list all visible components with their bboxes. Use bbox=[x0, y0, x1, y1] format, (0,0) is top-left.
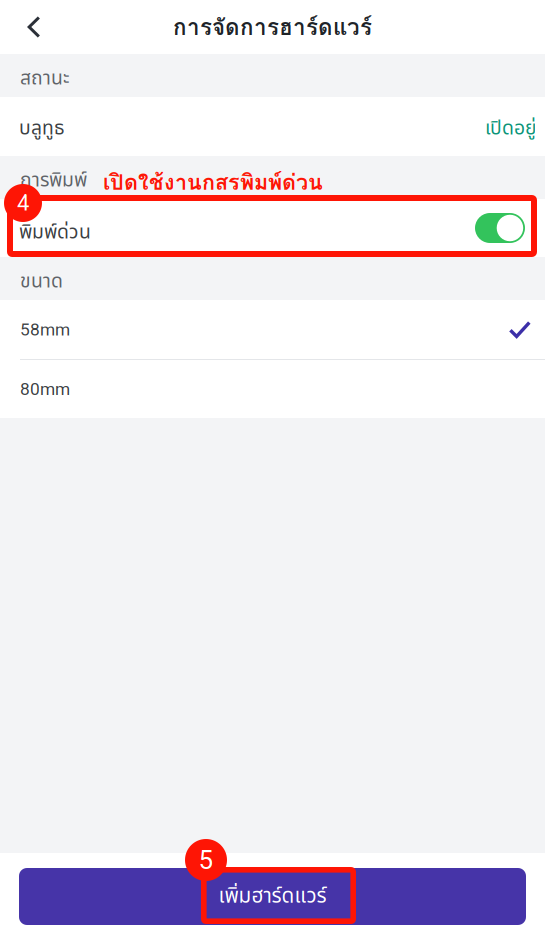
staticText: การพิมพ์ bbox=[20, 166, 87, 195]
button[interactable]: พิมพ์ด่วน bbox=[0, 199, 545, 257]
staticText: เปิดอยู่ bbox=[485, 114, 536, 143]
staticText: 5 bbox=[198, 845, 213, 875]
button[interactable]: 58mm bbox=[0, 300, 545, 359]
button[interactable]: 80mm bbox=[0, 360, 545, 418]
staticText: 80mm bbox=[20, 379, 70, 399]
staticText: เพิ่มฮาร์ดแวร์ bbox=[218, 881, 326, 912]
staticText: 4 bbox=[17, 190, 29, 216]
staticText: สถานะ bbox=[20, 64, 70, 93]
staticText: 58mm bbox=[20, 319, 70, 340]
staticText: เปิดใช้งานกสรพิมพ์ด่วน bbox=[103, 165, 323, 199]
staticText: การจัดการฮาร์ดแวร์ bbox=[173, 9, 372, 45]
staticText: ขนาด bbox=[20, 267, 63, 296]
button[interactable]: เพิ่มฮาร์ดแวร์ bbox=[0, 853, 545, 940]
staticText: บลูทูธ bbox=[19, 114, 65, 143]
staticText: พิมพ์ด่วน bbox=[19, 218, 91, 247]
button[interactable]: Back bbox=[0, 0, 68, 54]
